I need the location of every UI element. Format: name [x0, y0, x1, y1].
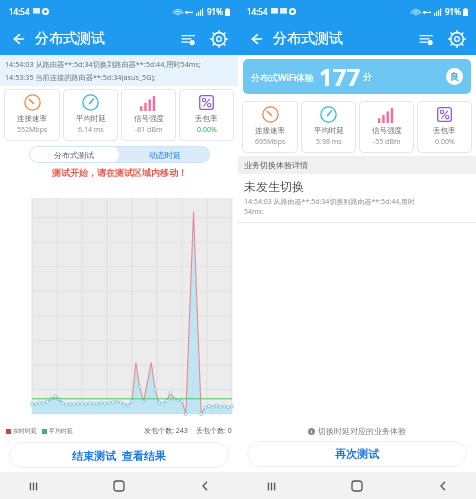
staticText: 丢包率 — [195, 114, 218, 123]
button[interactable]: Home — [108, 475, 130, 497]
staticText: 177 — [319, 60, 361, 93]
button[interactable]: Back — [194, 475, 216, 497]
staticText: 连接速率 — [255, 126, 285, 135]
button[interactable]: 平均时延 — [63, 89, 118, 141]
staticText: 平均时延 — [76, 114, 106, 123]
button[interactable]: Recents — [260, 475, 282, 497]
staticText: 0.00% — [197, 125, 217, 135]
button[interactable]: Home — [346, 475, 368, 497]
staticText: 91% — [207, 6, 223, 17]
staticText: 552Mbps — [17, 125, 48, 135]
staticText: 业务切换体验详情 — [244, 160, 308, 170]
button[interactable]: Back — [8, 29, 28, 49]
staticText: 丢包率 — [433, 126, 456, 135]
button[interactable]: 结束测试 查看结果 — [9, 442, 229, 468]
staticText: 结束测试 查看结果 — [72, 448, 166, 463]
staticText: 91% — [445, 6, 461, 17]
staticText: 未发生切换 — [244, 179, 304, 194]
staticText: 丢包个数: 0 — [196, 426, 232, 436]
staticText: 良 — [450, 71, 459, 82]
button[interactable]: 连接速率 — [242, 101, 298, 153]
staticText: 平均时延 — [314, 126, 344, 135]
staticText: 再次测试 — [335, 447, 379, 461]
button[interactable]: Recents — [22, 475, 44, 497]
staticText: 信号强度 — [134, 114, 164, 123]
staticText: 14:54:03 从路由器**:5d:34切换到路由器**:5d:44,用时 — [244, 197, 416, 207]
button[interactable]: 再次测试 — [247, 441, 467, 467]
button[interactable]: History — [415, 28, 437, 50]
staticText: 切换时延对应的业务体验 — [318, 426, 406, 436]
button[interactable]: 连接速率 — [4, 89, 60, 141]
button[interactable]: 信号强度 — [121, 89, 176, 141]
staticText: 实时时延 — [13, 427, 37, 435]
staticText: 连接速率 — [17, 114, 47, 123]
button[interactable]: History — [177, 28, 199, 50]
button[interactable]: 分布式WiFi体验 — [243, 59, 471, 94]
staticText: 信号强度 — [372, 126, 402, 135]
staticText: 分布式测试 — [54, 150, 94, 160]
staticText: 发包个数: 243 — [144, 426, 188, 436]
button[interactable]: Back — [432, 475, 454, 497]
staticText: 14:54 — [247, 6, 268, 17]
button[interactable]: 分布式测试 — [29, 146, 119, 163]
staticText: 分布式测试 — [35, 30, 105, 48]
staticText: 14:54:03 从路由器**:5d:34切换到路由器**:5d:44,用时54… — [5, 59, 201, 69]
staticText: 14:54 — [9, 6, 30, 17]
button[interactable]: 丢包率 — [417, 101, 472, 153]
staticText: 测试开始，请在测试区域内移动！ — [52, 167, 187, 178]
button[interactable]: 信号强度 — [359, 101, 414, 153]
staticText: 6.14 ms — [78, 125, 104, 135]
button[interactable]: Settings — [446, 28, 468, 50]
staticText: 动态时延 — [149, 150, 181, 160]
button[interactable]: 动态时延 — [119, 146, 210, 163]
button[interactable]: 丢包率 — [179, 89, 234, 141]
staticText: 分布式测试 — [273, 30, 343, 48]
button[interactable]: 平均时延 — [301, 101, 356, 153]
staticText: 0.00% — [435, 137, 455, 147]
staticText: 分 — [363, 71, 372, 82]
button[interactable]: Back — [246, 29, 266, 49]
staticText: -61 dBm — [135, 125, 163, 135]
staticText: 14:53:35 当前连接的路由器**:5d:34(asus_5G); — [5, 72, 156, 82]
staticText: 54ms: — [244, 207, 264, 217]
staticText: 695Mbps — [255, 137, 286, 147]
staticText: 5.98 ms — [316, 137, 342, 147]
staticText: -55 dBm — [373, 137, 401, 147]
staticText: 分布式WiFi体验 — [251, 71, 315, 83]
staticText: 平均时延 — [49, 427, 73, 435]
button[interactable]: Settings — [208, 28, 230, 50]
